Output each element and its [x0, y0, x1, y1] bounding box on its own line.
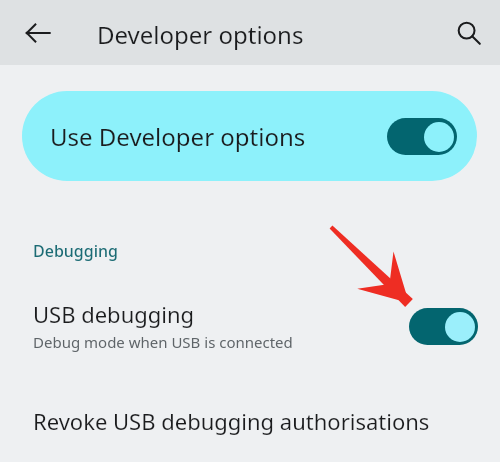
staticText: Developer options — [97, 18, 304, 51]
button[interactable]: USB debugging toggle — [409, 308, 478, 345]
button[interactable]: Use Developer options — [22, 91, 477, 181]
button[interactable]: Back — [14, 9, 62, 57]
staticText: Debug mode when USB is connected — [33, 332, 293, 352]
button[interactable]: Revoke USB debugging authorisations — [0, 392, 500, 462]
button[interactable]: Search — [445, 9, 493, 57]
button[interactable]: USB debugging — [0, 288, 500, 366]
staticText: Revoke USB debugging authorisations — [33, 406, 430, 436]
staticText: Debugging — [33, 240, 118, 262]
staticText: Use Developer options — [50, 120, 306, 153]
button[interactable]: Use Developer options toggle — [387, 118, 457, 155]
staticText: USB debugging — [33, 299, 195, 329]
